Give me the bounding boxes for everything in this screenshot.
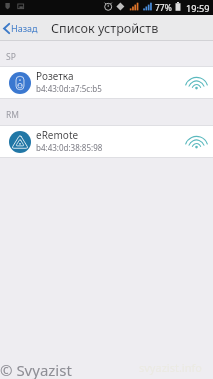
staticText: © Svyazist <box>0 360 72 379</box>
staticText: Список устройств <box>51 20 159 37</box>
button[interactable]: eRemote <box>0 125 213 158</box>
staticText: 77% <box>155 2 172 14</box>
other: Wi-Fi connected <box>185 135 208 149</box>
staticText: svyazist.info <box>139 360 202 375</box>
staticText: 19:59 <box>186 2 210 15</box>
button[interactable]: Розетка <box>0 66 213 99</box>
staticText: RM <box>6 109 19 121</box>
staticText: b4:43:0d:a7:5c:b5 <box>36 83 102 94</box>
staticText: Назад <box>11 22 38 34</box>
button[interactable]: Назад <box>0 15 42 41</box>
staticText: eRemote <box>36 128 79 142</box>
staticText: b4:43:0d:38:85:98 <box>36 142 103 153</box>
other: Wi-Fi connected <box>185 76 208 90</box>
staticText: SP <box>6 51 16 63</box>
staticText: Розетка <box>36 69 74 83</box>
